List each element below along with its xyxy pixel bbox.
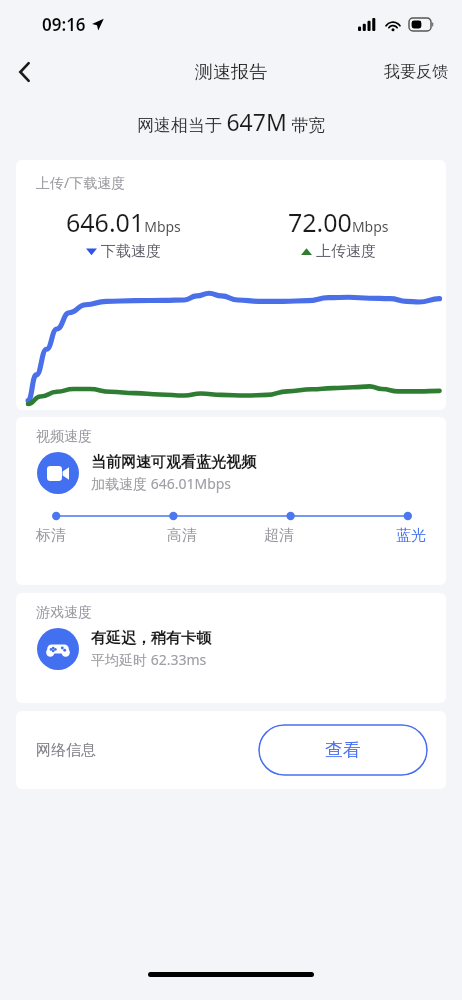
staticText: 高清 bbox=[167, 526, 197, 545]
staticText: 当前网速可观看蓝光视频 bbox=[91, 453, 256, 472]
staticText: 加载速度 646.01Mbps bbox=[91, 474, 232, 493]
staticText: 平均延时 62.33ms bbox=[91, 650, 207, 669]
staticText: 蓝光 bbox=[396, 526, 426, 545]
staticText: 有延迟，稍有卡顿 bbox=[91, 629, 211, 648]
staticText: 视频速度 bbox=[36, 428, 92, 446]
staticText: 我要反馈 bbox=[384, 62, 448, 82]
staticText: 测速报告 bbox=[195, 61, 267, 84]
staticText: 上传/下载速度 bbox=[36, 173, 126, 192]
staticText: 游戏速度 bbox=[36, 604, 92, 622]
staticText: 09:16 bbox=[42, 13, 86, 36]
staticText: 查看 bbox=[325, 739, 361, 762]
staticText: 网速相当于 647M 带宽 bbox=[137, 106, 326, 137]
staticText: 646.01Mbps bbox=[66, 205, 181, 239]
button[interactable]: 我要反馈 bbox=[370, 48, 462, 96]
staticText: 网络信息 bbox=[36, 741, 96, 760]
staticText: 超清 bbox=[264, 526, 294, 545]
button[interactable]: 返回 bbox=[0, 48, 48, 96]
button[interactable]: 查看 bbox=[258, 724, 428, 776]
staticText: 72.00Mbps bbox=[288, 205, 389, 239]
staticText: 下载速度 bbox=[101, 242, 161, 261]
staticText: 上传速度 bbox=[316, 242, 376, 261]
staticText: 标清 bbox=[36, 526, 66, 545]
